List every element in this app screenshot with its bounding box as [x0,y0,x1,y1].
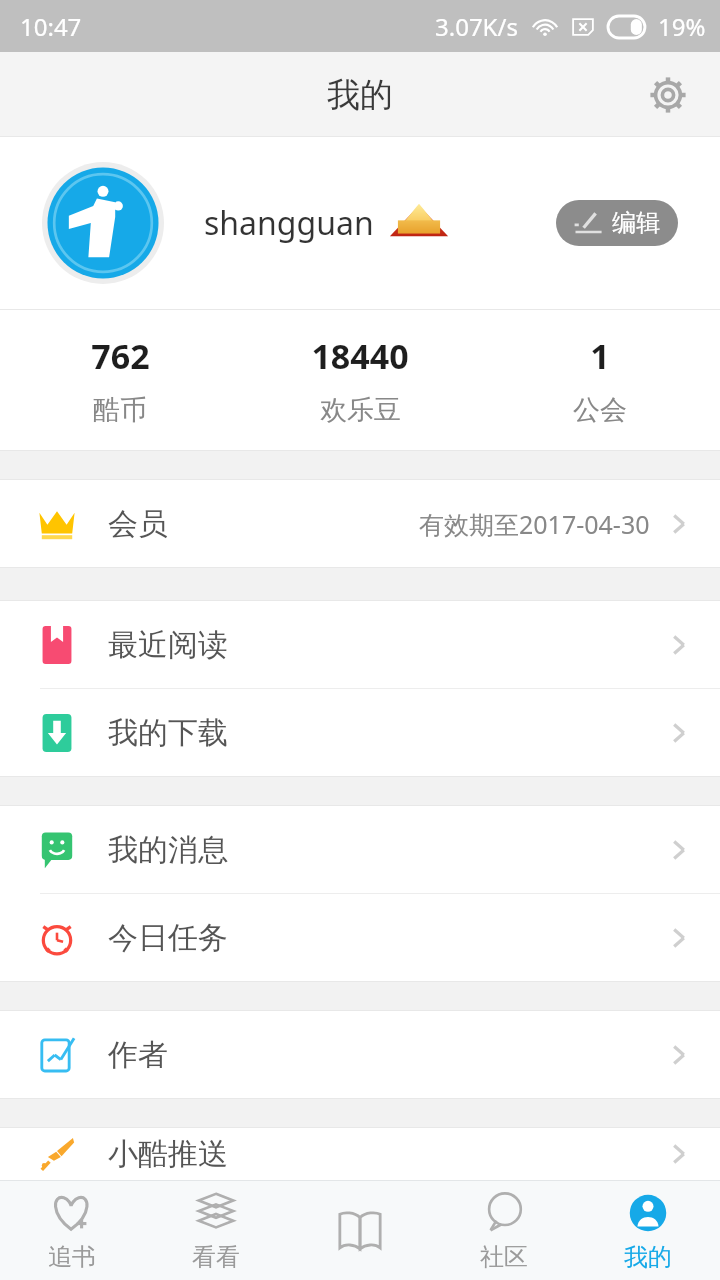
button[interactable]: 1 [480,333,720,427]
staticText: 我的 [624,1242,672,1272]
button[interactable]: 762 [0,333,240,427]
staticText: 1 [590,333,610,379]
staticText: 762 [91,333,150,379]
staticText: 最近阅读 [108,626,228,664]
staticText: 酷币 [93,393,147,427]
staticText: 我的消息 [108,831,228,869]
staticText: 3.07K/s [435,10,518,43]
staticText: 编辑 [612,208,660,238]
button[interactable]: 我的下载 [0,689,720,776]
staticText: 欢乐豆 [320,393,401,427]
button[interactable]: 18440 [240,333,480,427]
staticText: 社区 [480,1242,528,1272]
staticText: 看看 [192,1242,240,1272]
staticText: 我的下载 [108,714,228,752]
staticText: 会员 [108,505,168,543]
button[interactable]: 编辑 [556,200,678,246]
staticText: 我的 [327,74,393,116]
button[interactable]: 小酷推送 [0,1128,720,1180]
button[interactable]: Settings [642,69,694,121]
staticText: 今日任务 [108,919,228,957]
button[interactable]: 会员 [0,480,720,567]
staticText: 小酷推送 [108,1135,228,1173]
button[interactable]: 最近阅读 [0,601,720,688]
button[interactable]: 今日任务 [0,894,720,981]
staticText: 作者 [108,1036,168,1074]
staticText: 18440 [311,333,409,379]
button[interactable]: 书架 [288,1203,432,1259]
button[interactable]: 我的 [576,1189,720,1272]
button[interactable]: shangguan [0,137,720,309]
staticText: 公会 [573,393,627,427]
staticText: 有效期至2017-04-30 [419,507,650,541]
staticText: 追书 [48,1242,96,1272]
staticText: 19% [658,10,706,43]
staticText: shangguan [204,201,374,245]
button[interactable]: 我的消息 [0,806,720,893]
button[interactable]: 作者 [0,1011,720,1098]
button[interactable]: 看看 [144,1189,288,1272]
staticText: 10:47 [20,10,82,43]
button[interactable]: 追书 [0,1189,144,1272]
button[interactable]: 社区 [432,1189,576,1272]
